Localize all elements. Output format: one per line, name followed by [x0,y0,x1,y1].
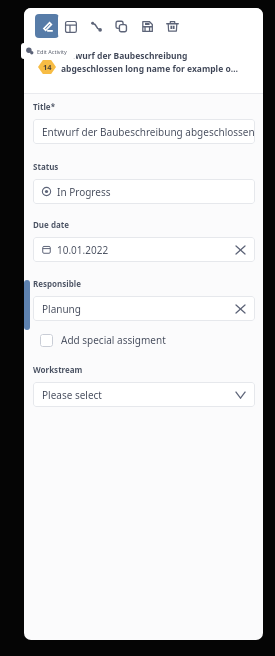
staticText: Workstream [33,364,83,375]
button[interactable]: Save [135,14,159,38]
button[interactable]: Layout [58,14,82,38]
button[interactable]: Connector [84,14,108,38]
staticText: Due date [33,219,70,230]
staticText: Entwurf der Baubeschreibung abgeschlosse… [42,125,255,139]
staticText: Edit Activity [37,48,67,55]
staticText: Title* [33,101,55,112]
staticText: Status [33,161,59,172]
staticText: Add special assigment [61,333,166,347]
staticText: 10.01.2022 [57,243,109,257]
button[interactable]: In Progress [33,179,255,204]
button[interactable]: Edit [35,14,59,38]
button[interactable]: Planung [33,296,255,321]
button[interactable]: Add special assigment [33,332,166,348]
staticText: Responsible [33,278,81,289]
staticText: Please select [42,388,102,402]
button[interactable]: Copy [109,14,133,38]
button[interactable]: Delete [160,14,184,38]
staticText: 14 [43,62,52,72]
staticText: Planung [42,302,81,316]
staticText: Entwurf der Baubeschreibung abgeschlosse… [61,50,240,75]
button[interactable]: Please select [33,382,255,407]
button[interactable]: 10.01.2022 [33,237,255,262]
staticText: In Progress [57,185,111,199]
button[interactable]: Entwurf der Baubeschreibung abgeschlosse… [33,119,255,144]
